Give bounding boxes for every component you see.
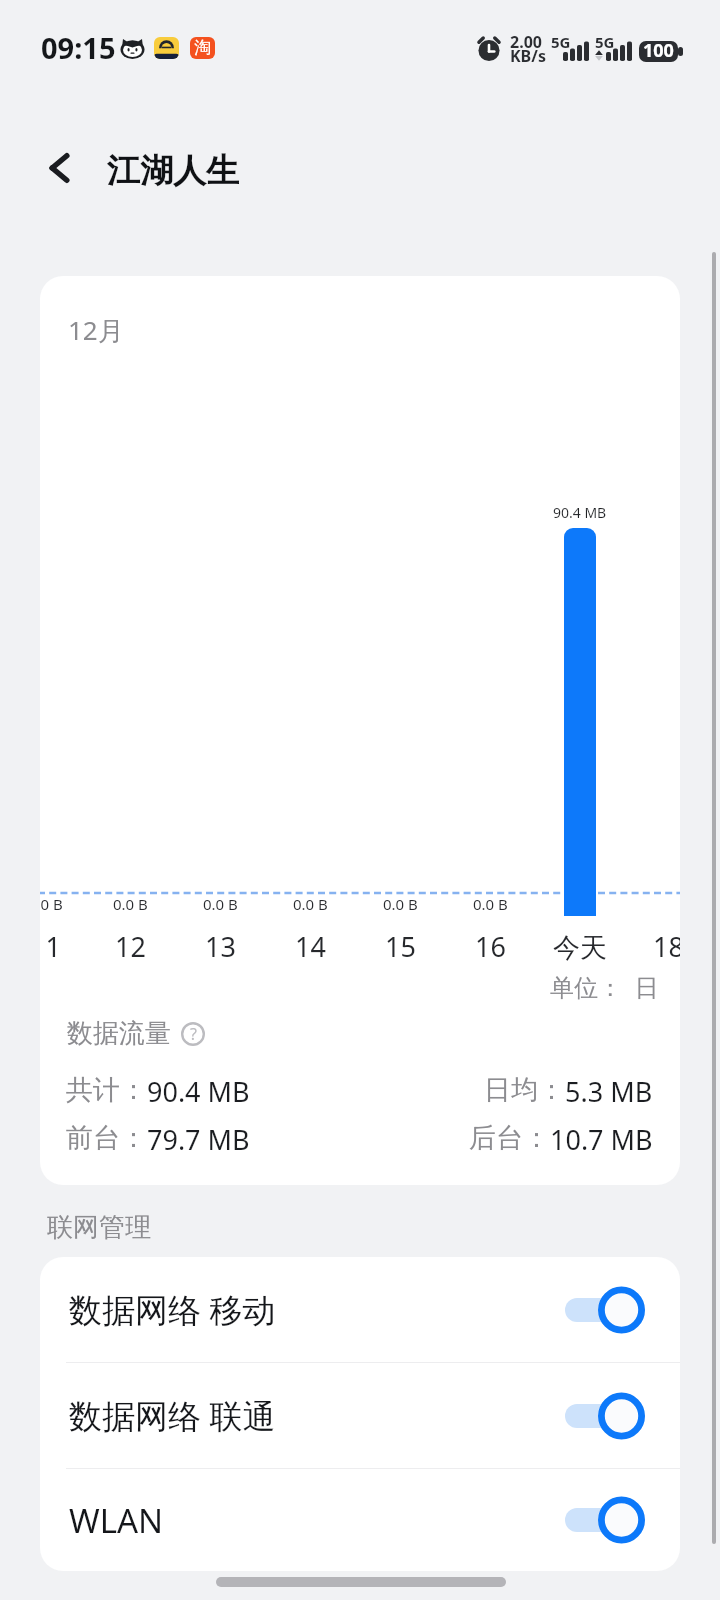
button[interactable]: 数据网络 移动 [40, 1257, 680, 1362]
staticText: 5G [595, 32, 615, 52]
staticText: 淘 [194, 37, 211, 58]
staticText: 0.0 B [293, 894, 328, 914]
button[interactable]: Help [181, 1022, 205, 1046]
staticText: 0.0 B [473, 894, 508, 914]
staticText: 后台： [469, 1121, 550, 1155]
staticText: 0.0 B [383, 894, 418, 914]
staticText: 0.0 B [203, 894, 238, 914]
staticText: 2.00 [510, 31, 542, 53]
staticText: 09:15 [41, 28, 116, 67]
staticText: 0.0 B [113, 894, 148, 914]
staticText: ? [190, 1023, 197, 1045]
staticText: 5G [551, 32, 571, 52]
staticText: 0.0 B [40, 894, 63, 914]
staticText: 日均： [484, 1073, 565, 1107]
staticText: 江湖人生 [107, 150, 239, 192]
staticText: 数据网络 联通 [69, 1393, 276, 1438]
button[interactable]: 数据网络 联通 [40, 1363, 680, 1468]
button[interactable]: WLAN [40, 1469, 680, 1571]
staticText: 90.4 MB [147, 1073, 250, 1110]
button[interactable]: Toggle [565, 1496, 645, 1544]
staticText: 数据网络 移动 [69, 1287, 276, 1332]
staticText: 单位： 日 [550, 970, 659, 1003]
staticText: KB/s [510, 45, 546, 67]
staticText: 12月 [68, 312, 124, 348]
staticText: 10.7 MB [550, 1121, 653, 1158]
staticText: 11 [40, 928, 61, 965]
staticText: 14 [295, 928, 326, 965]
staticText: 90.4 MB [553, 503, 607, 522]
staticText: 12 [115, 928, 146, 965]
button[interactable]: Toggle [565, 1286, 645, 1334]
staticText: 16 [475, 928, 506, 965]
staticText: 联网管理 [47, 1211, 151, 1244]
staticText: WLAN [69, 1498, 164, 1543]
staticText: 数据流量 [67, 1017, 171, 1050]
staticText: 18 [653, 928, 680, 965]
staticText: 13 [205, 928, 236, 965]
staticText: 100 [643, 38, 674, 63]
button[interactable]: Toggle [565, 1392, 645, 1440]
button[interactable]: Back [24, 132, 96, 204]
staticText: 前台： [66, 1121, 147, 1155]
staticText: 79.7 MB [147, 1121, 250, 1158]
staticText: 5.3 MB [565, 1073, 653, 1110]
staticText: 共计： [66, 1073, 147, 1107]
staticText: 今天 [553, 931, 607, 965]
staticText: 15 [385, 928, 416, 965]
